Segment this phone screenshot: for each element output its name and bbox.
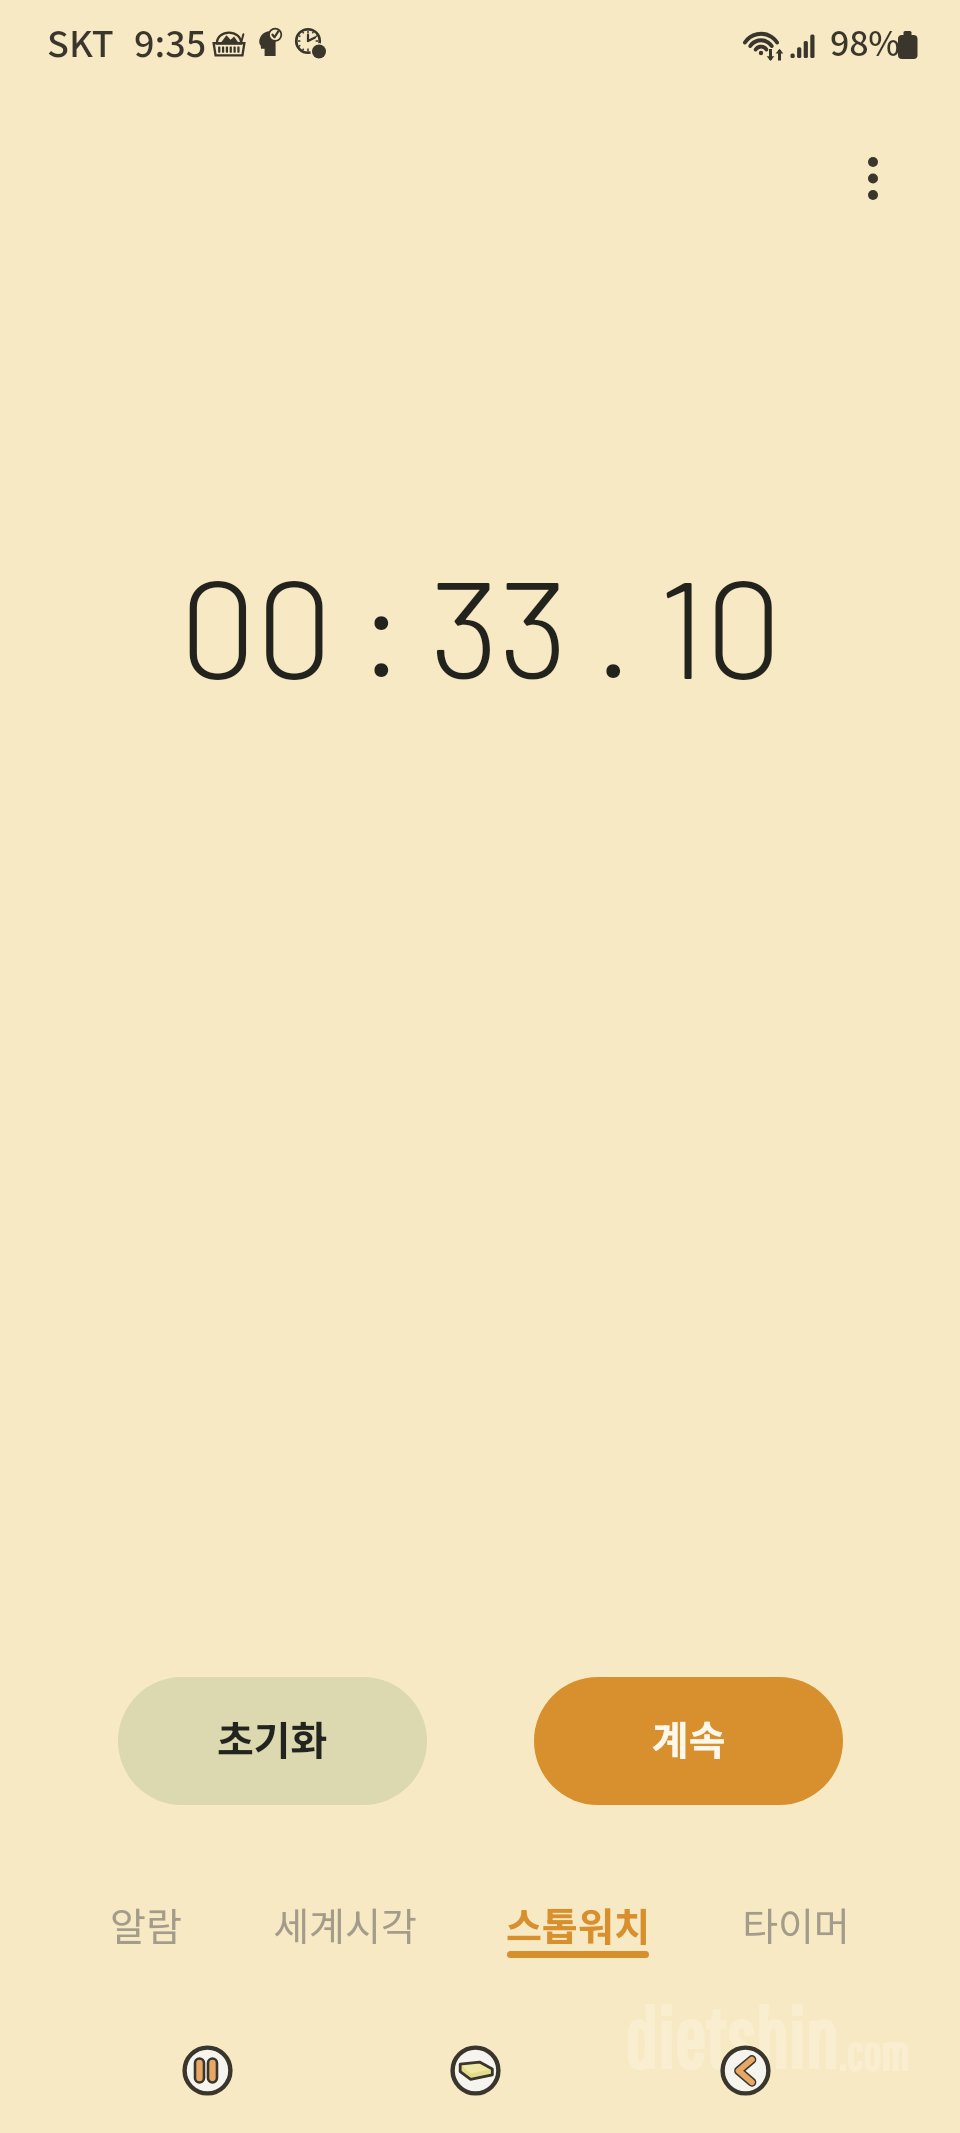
staticText: 스톱워치 [506, 1896, 650, 1952]
button[interactable]: Recents [164, 2027, 250, 2113]
button[interactable]: Back [702, 2027, 788, 2113]
button[interactable]: Home [432, 2027, 518, 2113]
staticText: .com [838, 2025, 909, 2080]
staticText: 00 : 33 . 10 [179, 541, 782, 707]
staticText: 세계시각 [273, 1896, 417, 1952]
staticText: dietshin [624, 1990, 838, 2086]
button[interactable]: 알람 [36, 1880, 256, 1990]
staticText: 9:35 [134, 15, 207, 67]
button[interactable]: 초기화 [118, 1677, 427, 1805]
staticText: 알람 [110, 1896, 182, 1952]
staticText: 계속 [652, 1709, 726, 1767]
staticText: SKT [47, 15, 114, 67]
staticText: 98% [830, 17, 901, 66]
button[interactable]: 스톱워치 [468, 1880, 688, 1990]
button[interactable]: 세계시각 [235, 1880, 455, 1990]
staticText: 타이머 [742, 1896, 850, 1952]
button[interactable]: 타이머 [686, 1880, 906, 1990]
button[interactable]: More options [825, 130, 921, 226]
staticText: 초기화 [217, 1709, 328, 1767]
button[interactable]: 계속 [534, 1677, 843, 1805]
